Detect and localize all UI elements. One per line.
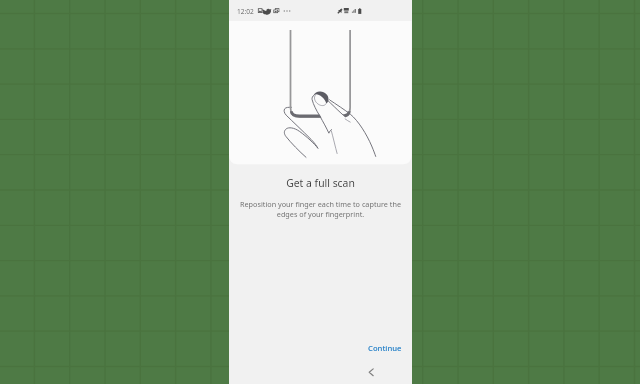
button[interactable]: Continue xyxy=(359,338,407,358)
button[interactable]: Back xyxy=(360,361,382,383)
staticText: Get a full scan xyxy=(229,176,412,192)
staticText: Continue xyxy=(368,343,402,353)
staticText: Reposition your finger each time to capt… xyxy=(229,199,412,223)
staticText: 12:02 xyxy=(237,7,254,16)
